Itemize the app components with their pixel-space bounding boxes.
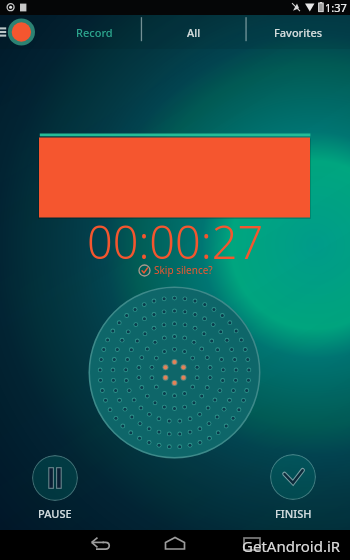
staticText: Skip silence? [154,263,213,277]
button[interactable]: Finish [270,454,316,500]
staticText: 00:00:27 [87,211,264,272]
staticText: Record [76,25,113,40]
staticText: GetAndroid.iR [242,536,341,556]
staticText: 1:37 [325,0,347,15]
button[interactable]: Skip silence? [138,263,213,277]
button[interactable]: Menu [0,15,44,49]
button[interactable]: All [141,15,246,49]
button[interactable]: Recent apps [229,530,275,560]
staticText: Favorites [274,25,323,40]
button[interactable]: Home [152,530,198,560]
staticText: FINISH [275,506,312,521]
button[interactable]: Back [78,530,124,560]
staticText: PAUSE [38,506,72,521]
button[interactable]: Pause [32,455,78,501]
button[interactable]: Favorites [246,15,350,49]
staticText: All [187,25,201,40]
button[interactable]: Record [47,15,141,49]
